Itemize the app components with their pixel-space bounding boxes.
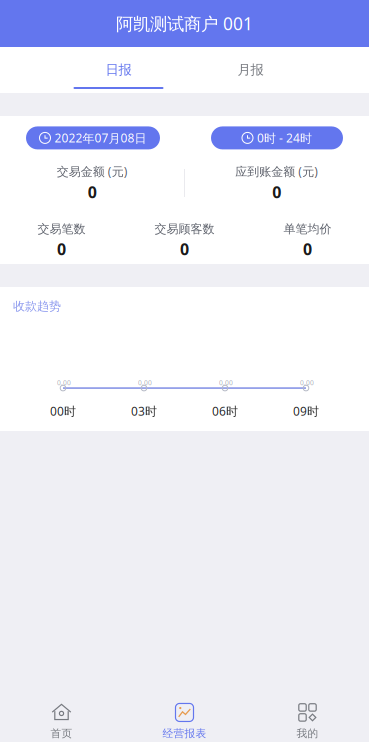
staticText: 月报: [237, 62, 263, 78]
staticText: 0.00: [138, 378, 152, 387]
staticText: 00时: [50, 403, 76, 419]
staticText: 日报: [105, 62, 131, 78]
staticText: 我的: [296, 727, 318, 740]
staticText: 0: [57, 238, 66, 259]
staticText: 交易顾客数: [154, 222, 214, 236]
button[interactable]: 经营报表: [123, 689, 246, 742]
staticText: 0时 - 24时: [257, 130, 312, 146]
staticText: 阿凯测试商户 001: [116, 12, 253, 35]
button[interactable]: 我的: [246, 689, 369, 742]
staticText: 收款趋势: [13, 299, 61, 314]
staticText: 03时: [131, 403, 157, 419]
button[interactable]: 首页: [0, 689, 123, 742]
staticText: 交易金额 (元): [57, 163, 128, 179]
staticText: 应到账金额 (元): [235, 163, 318, 179]
staticText: 06时: [212, 403, 238, 419]
staticText: 交易笔数: [37, 222, 85, 236]
staticText: 2022年07月08日: [54, 130, 146, 146]
staticText: 单笔均价: [283, 222, 331, 236]
staticText: 0.00: [300, 378, 314, 387]
staticText: 经营报表: [162, 727, 206, 740]
button[interactable]: 日报: [73, 47, 163, 93]
staticText: 0.00: [219, 378, 233, 387]
staticText: 09时: [293, 403, 319, 419]
staticText: 首页: [50, 727, 72, 740]
staticText: 0: [272, 181, 281, 203]
staticText: 0: [180, 238, 189, 259]
staticText: 0.00: [57, 378, 71, 387]
button[interactable]: 0时 - 24时: [211, 126, 343, 149]
button[interactable]: 2022年07月08日: [26, 126, 160, 149]
staticText: 0: [88, 181, 97, 203]
button[interactable]: 月报: [205, 47, 295, 93]
staticText: 0: [303, 238, 312, 259]
